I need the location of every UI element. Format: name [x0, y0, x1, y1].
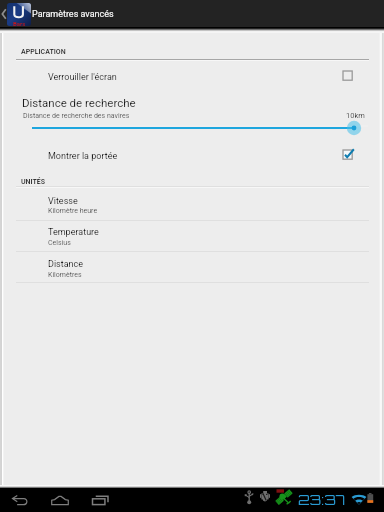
button[interactable]: Home — [43, 491, 77, 509]
staticText: Montrer la portée — [48, 151, 118, 162]
staticText: Temperature — [48, 227, 99, 238]
button[interactable]: Distance de recherche — [3, 96, 381, 136]
staticText: Bars — [13, 20, 26, 26]
button[interactable]: Distance — [3, 251, 381, 282]
staticText: Vitesse — [48, 196, 78, 207]
staticText: Distance — [48, 259, 84, 270]
button[interactable]: Verrouiller l'écran — [3, 63, 381, 87]
staticText: Kilomètres — [48, 271, 82, 279]
staticText: UNITÉS — [21, 178, 46, 186]
button[interactable]: Navigate up — [0, 0, 31, 27]
staticText: Paramètres avancés — [32, 9, 114, 20]
staticText: Kilomètre heure — [48, 207, 98, 215]
staticText: Distance de recherche des navires — [23, 112, 130, 120]
staticText: APPLICATION — [21, 48, 66, 56]
button[interactable]: Back — [4, 491, 36, 509]
staticText: Celsius — [48, 239, 71, 247]
staticText: 23:37 — [298, 491, 345, 509]
button[interactable]: Montrer la portée — [3, 142, 381, 166]
staticText: 10km — [346, 111, 365, 120]
button[interactable]: Vitesse — [3, 186, 381, 220]
button[interactable]: Temperature — [3, 220, 381, 251]
button[interactable]: Recent apps — [84, 491, 117, 509]
staticText: Verrouiller l'écran — [48, 72, 117, 83]
staticText: Distance de recherche — [22, 96, 136, 109]
